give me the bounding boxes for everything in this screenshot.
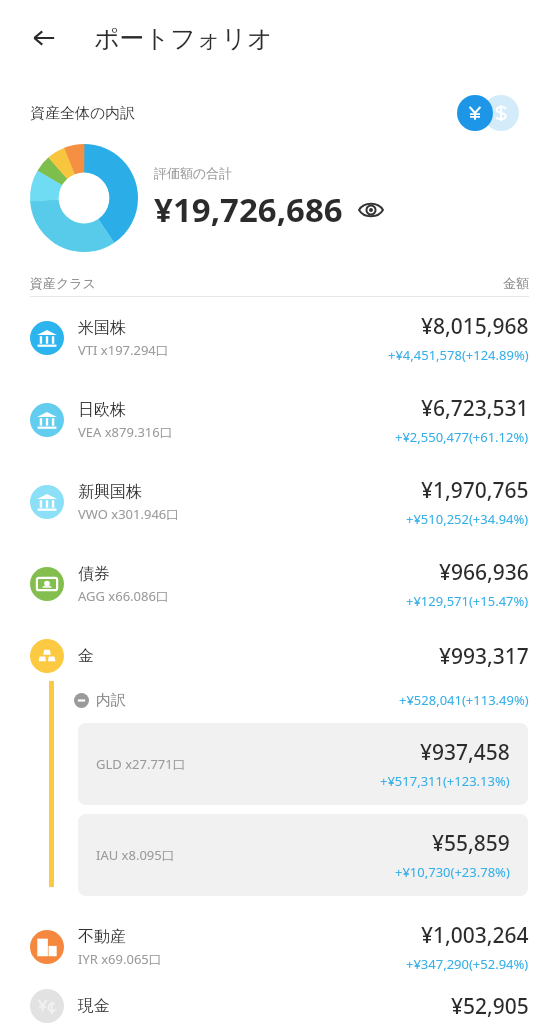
staticText: ¥966,936 xyxy=(439,558,529,587)
button[interactable]: Hide amount xyxy=(355,194,387,226)
staticText: VTI x197.294口 xyxy=(78,341,169,359)
button[interactable]: 不動産 xyxy=(0,906,559,988)
staticText: ¥19,726,686 xyxy=(154,187,343,232)
staticText: ¥52,905 xyxy=(451,992,529,1021)
staticText: 現金 xyxy=(78,996,110,1016)
staticText: ¥937,458 xyxy=(420,738,510,767)
staticText: AGG x66.086口 xyxy=(78,587,169,605)
staticText: +¥129,571(+15.47%) xyxy=(406,592,529,610)
staticText: +¥10,730(+23.78%) xyxy=(395,863,510,881)
staticText: +¥4,451,578(+124.89%) xyxy=(388,346,529,364)
button[interactable]: 現金 xyxy=(0,988,559,1024)
button[interactable]: GLD x27.771口 xyxy=(78,723,528,805)
button[interactable]: Show in USD xyxy=(483,95,519,131)
staticText: 日欧株 xyxy=(78,400,126,420)
staticText: 金 xyxy=(78,646,94,666)
staticText: +¥2,550,477(+61.12%) xyxy=(395,428,529,446)
button[interactable]: 内訳 xyxy=(74,691,126,710)
staticText: ポートフォリオ xyxy=(94,23,273,54)
staticText: ¥55,859 xyxy=(432,829,510,858)
staticText: 不動産 xyxy=(78,927,126,947)
button[interactable]: 債券 xyxy=(0,543,559,625)
staticText: 債券 xyxy=(78,564,110,584)
staticText: VWO x301.946口 xyxy=(78,505,180,523)
button[interactable]: 金 xyxy=(0,625,559,687)
staticText: IAU x8.095口 xyxy=(96,846,175,864)
button[interactable]: IAU x8.095口 xyxy=(78,814,528,896)
staticText: +¥517,311(+123.13%) xyxy=(380,772,510,790)
staticText: 資産クラス xyxy=(30,275,96,291)
staticText: 内訳 xyxy=(96,691,126,710)
staticText: 金額 xyxy=(503,275,529,291)
staticText: +¥347,290(+52.94%) xyxy=(406,955,529,973)
staticText: 米国株 xyxy=(78,318,126,338)
button[interactable]: Back xyxy=(22,16,66,60)
staticText: ¥6,723,531 xyxy=(421,394,529,423)
staticText: ¥8,015,968 xyxy=(421,312,529,341)
staticText: +¥528,041(+113.49%) xyxy=(399,691,529,709)
staticText: VEA x879.316口 xyxy=(78,423,173,441)
button[interactable]: 新興国株 xyxy=(0,461,559,543)
staticText: +¥510,252(+34.94%) xyxy=(406,510,529,528)
staticText: ¥1,970,765 xyxy=(421,476,529,505)
button[interactable]: Show in JPY xyxy=(457,95,493,131)
staticText: 資産全体の内訳 xyxy=(30,104,136,123)
staticText: IYR x69.065口 xyxy=(78,950,162,968)
staticText: GLD x27.771口 xyxy=(96,755,186,773)
button[interactable]: 日欧株 xyxy=(0,379,559,461)
staticText: 評価額の合計 xyxy=(154,165,233,181)
staticText: ¥993,317 xyxy=(439,642,529,671)
button[interactable]: 米国株 xyxy=(0,297,559,379)
staticText: 新興国株 xyxy=(78,482,142,502)
staticText: ¥1,003,264 xyxy=(421,921,529,950)
